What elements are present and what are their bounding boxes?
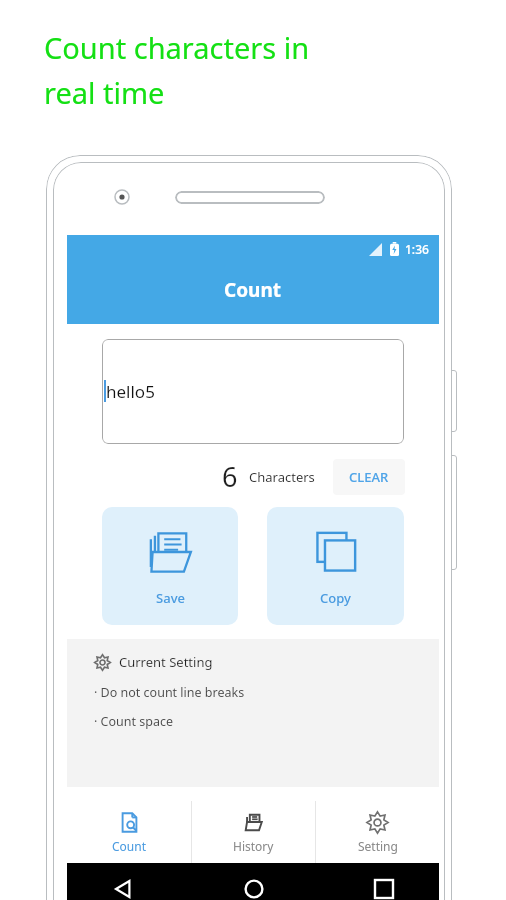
staticText: · Count space — [94, 713, 174, 730]
staticText: Count — [224, 277, 282, 303]
button[interactable]: Copy — [267, 507, 404, 625]
button[interactable]: Setting — [316, 801, 439, 863]
staticText: Characters — [249, 468, 315, 486]
button[interactable]: History — [192, 801, 315, 863]
staticText: Current Setting — [119, 653, 213, 671]
staticText: Setting — [358, 838, 398, 854]
staticText: 6 — [222, 458, 238, 495]
staticText: Save — [156, 589, 185, 607]
button[interactable]: Save — [102, 507, 238, 625]
staticText: History — [233, 838, 274, 854]
staticText: 1:36 — [405, 241, 429, 257]
button[interactable]: Recents — [375, 880, 393, 898]
staticText: Count characters in real time — [44, 28, 310, 113]
button[interactable]: hello5 — [102, 339, 404, 444]
staticText: Count — [112, 838, 147, 854]
staticText: hello5 — [106, 380, 155, 403]
button[interactable]: Count — [67, 801, 191, 863]
button[interactable]: Back — [113, 879, 133, 899]
staticText: CLEAR — [349, 468, 389, 486]
staticText: · Do not count line breaks — [94, 684, 245, 701]
button[interactable]: Home — [244, 879, 264, 899]
button[interactable]: CLEAR — [333, 459, 405, 495]
staticText: Copy — [320, 589, 351, 607]
